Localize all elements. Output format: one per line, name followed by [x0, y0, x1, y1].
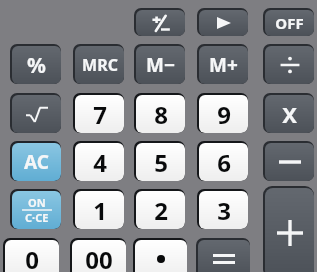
button[interactable]: Memory minus [134, 44, 185, 84]
button[interactable]: 8 [134, 93, 185, 133]
button[interactable]: Multiply [263, 93, 314, 133]
button[interactable]: Sign change plus minus [134, 8, 185, 36]
button[interactable]: All clear [10, 141, 61, 181]
staticText: 7 [93, 98, 107, 131]
staticText: M+ [209, 52, 238, 78]
staticText: 0 [25, 243, 39, 272]
staticText: 5 [154, 146, 168, 179]
button[interactable]: 0 [3, 238, 59, 272]
button[interactable]: Percent [10, 44, 61, 84]
button[interactable]: 5 [134, 141, 185, 181]
button[interactable]: 3 [197, 189, 248, 229]
button[interactable]: On clear entry [10, 189, 61, 229]
button[interactable]: Memory plus [197, 44, 248, 84]
staticText: 9 [217, 98, 231, 131]
button[interactable]: 2 [134, 189, 185, 229]
button[interactable]: Memory recall clear [73, 44, 124, 84]
button[interactable]: Square root [10, 93, 61, 133]
button[interactable]: Plus [263, 186, 314, 272]
button[interactable]: Equals [196, 238, 250, 272]
staticText: C·CE [25, 210, 49, 225]
button[interactable]: 7 [73, 93, 124, 133]
staticText: 6 [217, 146, 231, 179]
button[interactable]: Decimal point [133, 238, 187, 272]
button[interactable]: Off [263, 8, 314, 36]
staticText: 2 [154, 194, 168, 227]
button[interactable]: Divide [263, 44, 314, 84]
button[interactable]: Advance paper [197, 8, 248, 36]
staticText: 00 [85, 243, 113, 272]
staticText: 3 [217, 194, 231, 227]
staticText: % [27, 51, 46, 80]
staticText: 8 [154, 98, 168, 131]
button[interactable]: 4 [73, 141, 124, 181]
staticText: 4 [93, 146, 107, 179]
staticText: 1 [93, 194, 107, 227]
staticText: MRC [82, 54, 118, 76]
staticText: M− [146, 52, 175, 78]
staticText: OFF [275, 13, 304, 33]
button[interactable]: 1 [73, 189, 124, 229]
staticText: AC [24, 149, 49, 175]
staticText: X [282, 99, 297, 129]
staticText: ON [28, 195, 46, 210]
button[interactable]: Double zero [70, 238, 126, 272]
button[interactable]: Minus [263, 141, 314, 181]
button[interactable]: 9 [197, 93, 248, 133]
button[interactable]: 6 [197, 141, 248, 181]
